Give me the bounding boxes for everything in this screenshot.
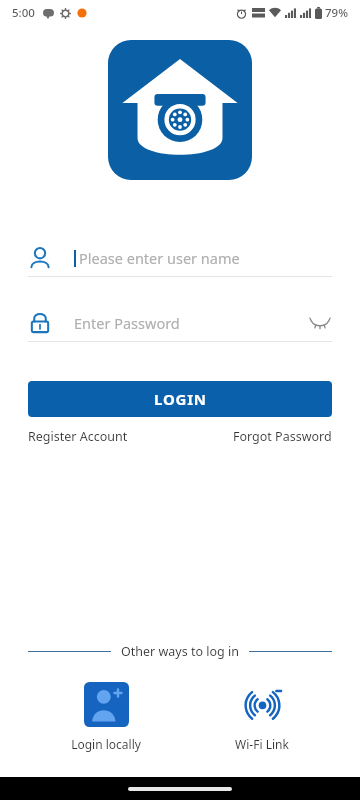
staticText: Enter Password [74,313,180,333]
staticText: 5:00 [12,5,35,21]
button[interactable]: Forgot Password [233,425,332,448]
other: Password [28,311,52,335]
staticText: Register Account [28,428,128,445]
button[interactable]: Register Account [28,425,128,448]
staticText: LOGIN [154,389,207,409]
staticText: Login locally [71,736,141,752]
button[interactable]: Login locally [47,680,165,754]
button[interactable]: Show password [308,311,332,335]
staticText: 79% [325,5,348,21]
button[interactable]: User name [28,240,332,277]
other: User name [28,246,52,270]
button[interactable]: Password [28,305,332,342]
staticText: Other ways to log in [121,643,239,660]
staticText: Please enter user name [79,248,240,268]
button[interactable]: LOGIN [28,381,332,417]
button[interactable]: Wi-Fi Link [211,680,313,754]
staticText: Forgot Password [233,428,332,445]
staticText: Wi-Fi Link [235,736,289,752]
